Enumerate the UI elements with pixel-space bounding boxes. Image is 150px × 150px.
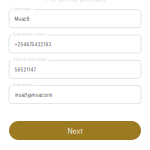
staticText: Enter email	[14, 83, 32, 87]
staticText: Enter name	[14, 7, 32, 11]
staticText: Next	[67, 127, 82, 135]
button[interactable]: 56521147	[9, 60, 141, 78]
staticText: Enter phone number	[14, 33, 46, 36]
staticText: Personal Details	[44, 0, 105, 4]
staticText: Enter id card number	[14, 58, 47, 61]
staticText: Muaz B	[14, 17, 29, 22]
staticText: +254675432193	[14, 42, 51, 47]
staticText: 56521147	[14, 67, 35, 72]
button[interactable]: Muaz B	[9, 10, 141, 28]
staticText: muaz1@muaz.com	[14, 93, 52, 98]
button[interactable]: +254675432193	[9, 35, 141, 53]
button[interactable]: Next	[9, 121, 141, 140]
button[interactable]: muaz1@muaz.com	[9, 86, 141, 104]
